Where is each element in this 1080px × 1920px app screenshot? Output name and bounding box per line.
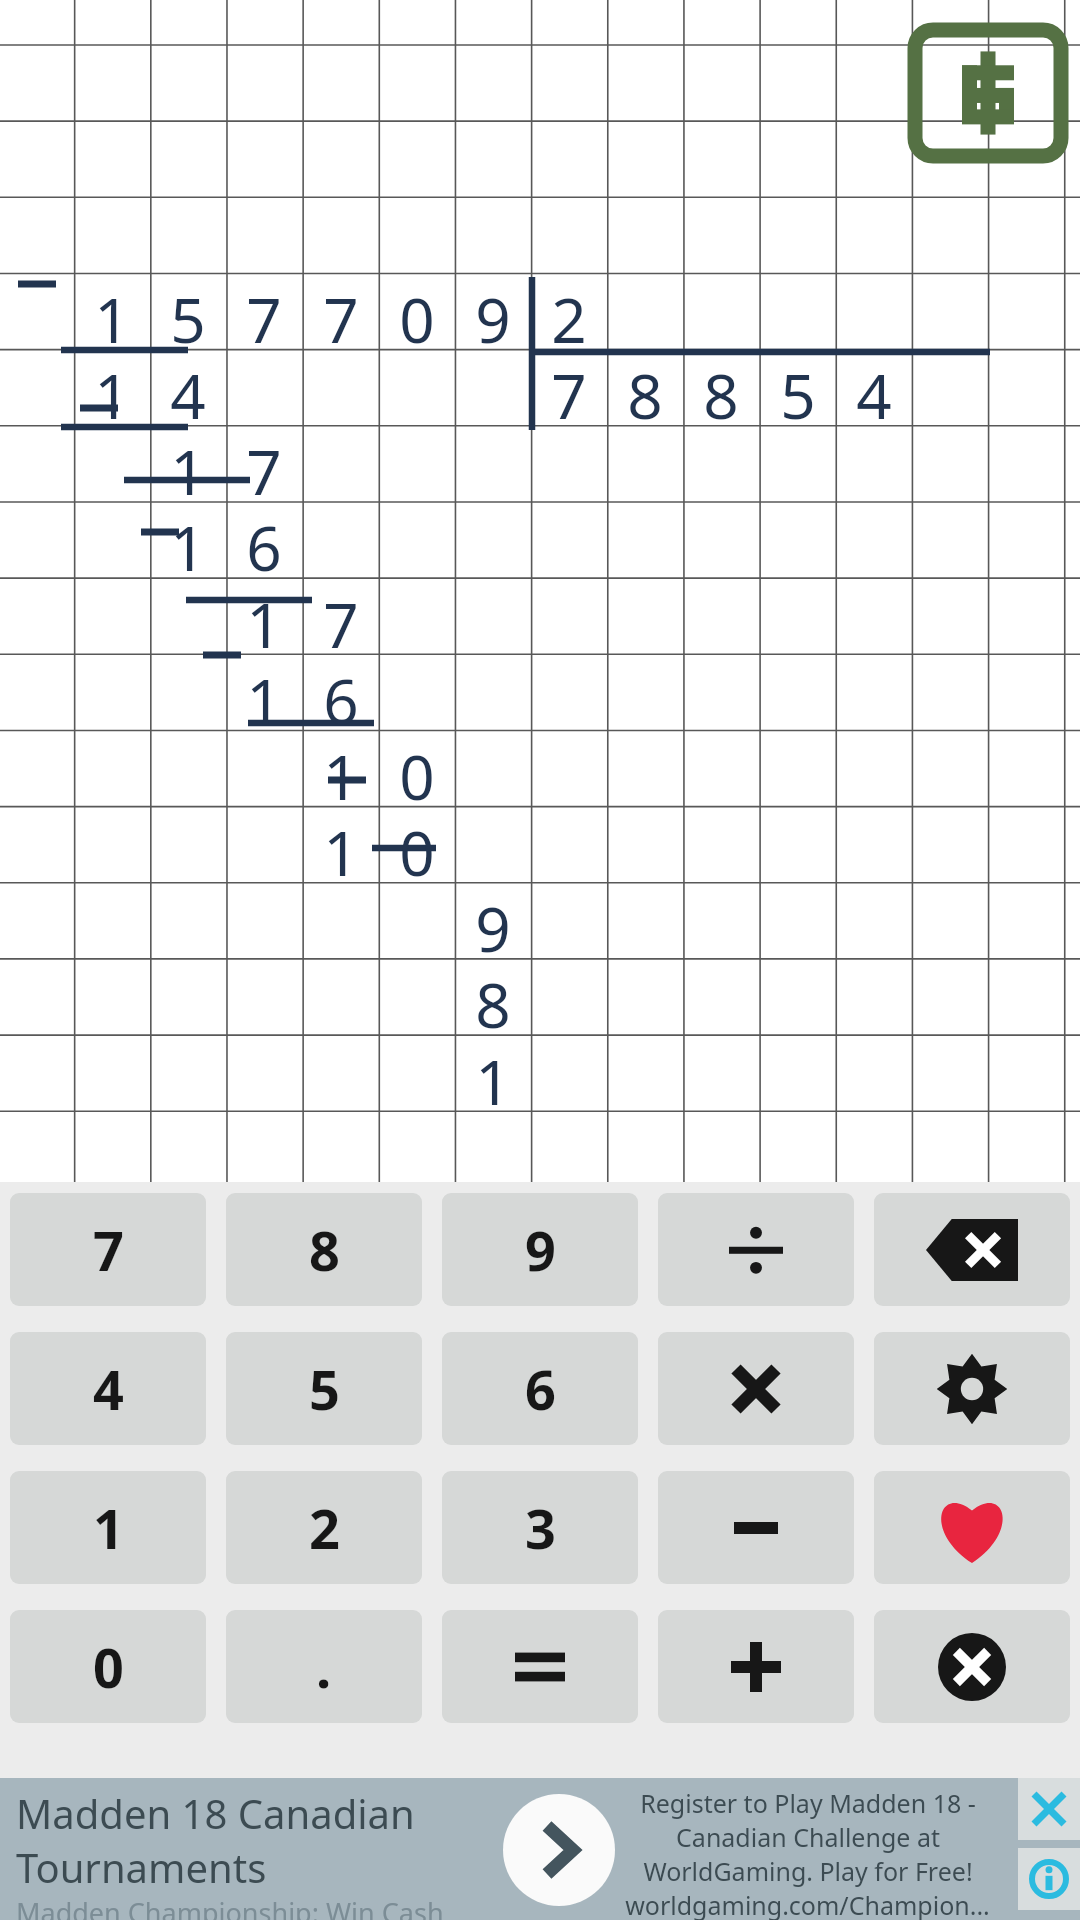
button[interactable]: 9 bbox=[442, 1193, 638, 1306]
staticText: 5 bbox=[170, 277, 206, 353]
staticText: 8 bbox=[475, 962, 511, 1038]
staticText: 7 bbox=[551, 353, 587, 429]
staticText: 7 bbox=[323, 277, 359, 353]
staticText: 5 bbox=[309, 1352, 340, 1426]
staticText: 1 bbox=[246, 582, 282, 658]
button[interactable]: 4 bbox=[10, 1332, 206, 1445]
staticText: 1 bbox=[94, 353, 130, 429]
staticText: 9 bbox=[525, 1213, 556, 1287]
staticText: 1 bbox=[323, 734, 359, 810]
button[interactable]: Remove ads / Buy pro bbox=[915, 30, 1061, 156]
staticText: 0 bbox=[399, 810, 435, 886]
staticText: 8 bbox=[309, 1213, 340, 1287]
staticText: 6 bbox=[246, 505, 282, 581]
staticText: 1 bbox=[246, 658, 282, 734]
staticText: Canadian Challenge at bbox=[676, 1820, 940, 1854]
staticText: Madden 18 Canadian bbox=[16, 1786, 415, 1840]
button[interactable]: Clear bbox=[874, 1610, 1070, 1723]
button[interactable]: 7 bbox=[10, 1193, 206, 1306]
staticText: 6 bbox=[323, 658, 359, 734]
staticText: 4 bbox=[170, 353, 206, 429]
staticText: 5 bbox=[780, 353, 816, 429]
staticText: 8 bbox=[627, 353, 663, 429]
button[interactable] bbox=[658, 1332, 854, 1445]
button[interactable] bbox=[442, 1610, 638, 1723]
staticText: 7 bbox=[323, 582, 359, 658]
staticText: 1 bbox=[323, 810, 359, 886]
staticText: 4 bbox=[856, 353, 892, 429]
button[interactable]: 0 bbox=[10, 1610, 206, 1723]
staticText: 2 bbox=[551, 277, 587, 353]
button[interactable] bbox=[658, 1610, 854, 1723]
staticText: 7 bbox=[93, 1213, 124, 1287]
button[interactable]: . bbox=[226, 1610, 422, 1723]
button[interactable]: Madden 18 Canadian bbox=[0, 1778, 1010, 1920]
button[interactable]: Close ad bbox=[1018, 1778, 1080, 1840]
staticText: 9 bbox=[475, 886, 511, 962]
staticText: Register to Play Madden 18 - bbox=[640, 1786, 976, 1820]
staticText: 1 bbox=[93, 1491, 124, 1565]
button[interactable]: 3 bbox=[442, 1471, 638, 1584]
staticText: 1 bbox=[170, 429, 206, 505]
button[interactable]: 6 bbox=[442, 1332, 638, 1445]
staticText: 0 bbox=[399, 277, 435, 353]
staticText: 9 bbox=[475, 277, 511, 353]
staticText: 3 bbox=[525, 1491, 556, 1565]
staticText: 1 bbox=[170, 505, 206, 581]
button[interactable]: 1 bbox=[10, 1471, 206, 1584]
button[interactable]: Ad info bbox=[1018, 1848, 1080, 1910]
button[interactable]: 8 bbox=[226, 1193, 422, 1306]
button[interactable]: Favorite bbox=[874, 1471, 1070, 1584]
staticText: 8 bbox=[703, 353, 739, 429]
staticText: 7 bbox=[246, 277, 282, 353]
button[interactable]: 5 bbox=[226, 1332, 422, 1445]
button[interactable]: Backspace bbox=[874, 1193, 1070, 1306]
staticText: 7 bbox=[246, 429, 282, 505]
button[interactable] bbox=[658, 1471, 854, 1584]
button[interactable] bbox=[658, 1193, 854, 1306]
staticText: Madden Championship: Win Cash bbox=[16, 1894, 444, 1920]
staticText: 6 bbox=[525, 1352, 556, 1426]
staticText: 0 bbox=[399, 734, 435, 810]
staticText: . bbox=[316, 1630, 332, 1704]
staticText: Tournaments bbox=[16, 1840, 267, 1894]
staticText: 1 bbox=[475, 1039, 511, 1115]
staticText: worldgaming.com/Champion... bbox=[625, 1888, 990, 1920]
staticText: 1 bbox=[94, 277, 130, 353]
button[interactable]: 2 bbox=[226, 1471, 422, 1584]
staticText: 2 bbox=[309, 1491, 340, 1565]
staticText: WorldGaming. Play for Free! bbox=[643, 1854, 973, 1888]
staticText: 0 bbox=[93, 1630, 124, 1704]
staticText: 4 bbox=[93, 1352, 124, 1426]
button[interactable]: Settings bbox=[874, 1332, 1070, 1445]
